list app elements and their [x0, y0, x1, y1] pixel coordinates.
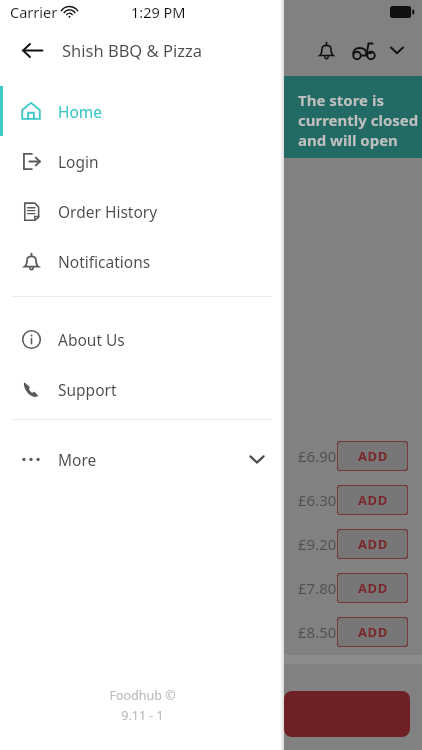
staticText: Support [58, 379, 117, 400]
staticText: The store is currently closed and will o… [298, 90, 422, 150]
button[interactable]: Delivery [344, 31, 382, 69]
button[interactable]: Support [0, 364, 284, 414]
button[interactable]: Home [0, 86, 284, 136]
staticText: Carrier [10, 2, 58, 22]
button[interactable]: Order History [0, 186, 284, 236]
staticText: £6.30 [298, 490, 337, 510]
staticText: More [58, 449, 97, 470]
staticText: ADD [358, 623, 388, 641]
staticText: ADD [358, 535, 388, 553]
button[interactable]: Expand [382, 35, 412, 65]
staticText: £9.20 [298, 534, 337, 554]
button[interactable]: Back [12, 30, 52, 70]
button[interactable]: ADD [337, 529, 408, 559]
button[interactable]: About Us [0, 314, 284, 364]
button[interactable]: Login [0, 136, 284, 186]
staticText: Home [58, 101, 103, 122]
staticText: ADD [358, 447, 388, 465]
button[interactable] [284, 691, 410, 737]
staticText: £7.80 [298, 578, 337, 598]
button[interactable]: ADD [337, 573, 408, 603]
staticText: 9.11 - 1 [121, 707, 164, 724]
staticText: ADD [358, 491, 388, 509]
staticText: Shish BBQ & Pizza [62, 39, 202, 61]
staticText: Login [58, 151, 99, 172]
staticText: £6.90 [298, 446, 337, 466]
button[interactable]: Notifications [308, 32, 344, 68]
button[interactable]: ADD [337, 485, 408, 515]
staticText: Notifications [58, 251, 151, 272]
button[interactable]: More [0, 434, 284, 484]
staticText: 1:29 PM [131, 2, 186, 22]
staticText: ADD [358, 579, 388, 597]
button[interactable]: Notifications [0, 236, 284, 286]
staticText: About Us [58, 329, 125, 350]
staticText: Foodhub © [109, 687, 176, 704]
button[interactable]: ADD [337, 617, 408, 647]
staticText: Order History [58, 201, 158, 222]
staticText: £8.50 [298, 622, 337, 642]
button[interactable]: ADD [337, 441, 408, 471]
